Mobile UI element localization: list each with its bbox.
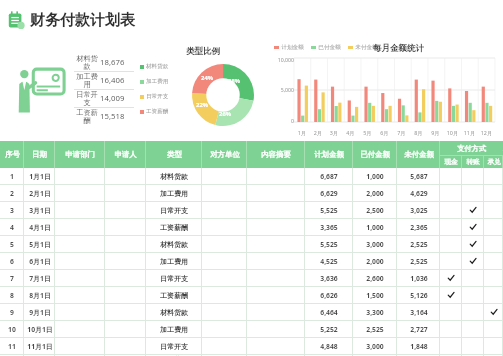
staticText: 2,525 (410, 257, 428, 266)
staticText: 5,687 (410, 172, 428, 181)
staticText: 未付金额 (355, 44, 378, 51)
staticText: 6月1日 (29, 257, 51, 266)
staticText: 支付方式 (457, 144, 486, 153)
staticText: 8月1日 (29, 291, 51, 300)
staticText: 1,000 (366, 223, 384, 232)
staticText: 22% (196, 101, 208, 109)
staticText: 加工费用 (160, 257, 188, 266)
staticText: 加工费用 (74, 72, 100, 89)
staticText: 日常开支 (160, 206, 188, 215)
staticText: 3,636 (320, 274, 338, 283)
staticText: 9 (10, 308, 14, 317)
staticText: 6 (10, 257, 14, 266)
staticText: 14,009 (100, 93, 132, 104)
staticText: 3,000 (366, 342, 384, 351)
button[interactable]: 2 (0, 185, 503, 201)
staticText: 6,687 (320, 172, 338, 181)
staticText: 15,518 (100, 111, 132, 122)
staticText: 对方单位 (210, 150, 240, 159)
staticText: 9月 (427, 129, 444, 136)
staticText: 5月1日 (29, 240, 51, 249)
staticText: 7月 (393, 129, 410, 136)
staticText: 日常开支 (146, 93, 169, 100)
staticText: 转账 (466, 158, 480, 166)
button[interactable]: 10 (0, 321, 503, 337)
button[interactable]: 11 (0, 338, 503, 354)
staticText: 2,525 (410, 240, 428, 249)
staticText: 1,848 (410, 342, 428, 351)
staticText: 4 (10, 223, 14, 232)
staticText: 4,629 (410, 189, 428, 198)
staticText: 2月 (310, 129, 326, 136)
staticText: 3月 (326, 129, 342, 136)
staticText: 日常开支 (160, 342, 188, 351)
staticText: 8 (10, 291, 14, 300)
button[interactable]: 1 (0, 168, 503, 184)
staticText: 4月1日 (29, 223, 51, 232)
staticText: 1,500 (366, 291, 384, 300)
button[interactable]: 7 (0, 270, 503, 286)
staticText: 2月1日 (29, 189, 51, 198)
staticText: 3月1日 (29, 206, 51, 215)
staticText: 计划金额 (314, 150, 344, 159)
button[interactable]: Report icon (0, 0, 503, 40)
staticText: 2 (10, 189, 14, 198)
staticText: 3 (10, 206, 14, 215)
staticText: 日常开支 (74, 90, 100, 107)
staticText: 5,525 (320, 206, 338, 215)
staticText: 财务付款计划表 (30, 11, 135, 30)
staticText: 现金 (444, 158, 458, 166)
staticText: 18,676 (100, 57, 132, 68)
button[interactable]: 6 (0, 253, 503, 269)
staticText: 工资薪酬 (160, 355, 188, 356)
staticText: 内容摘要 (261, 150, 291, 159)
button[interactable]: 12 (0, 355, 503, 356)
staticText: 11 (8, 342, 16, 351)
staticText: 2,000 (366, 189, 384, 198)
staticText: 2,525 (366, 325, 384, 334)
staticText: 加工费用 (160, 325, 188, 334)
staticText: 类型 (167, 150, 182, 159)
staticText: 8月 (410, 129, 427, 136)
staticText: 24% (201, 74, 213, 82)
button[interactable]: 9 (0, 304, 503, 320)
staticText: 3,000 (366, 240, 384, 249)
staticText: 1,000 (366, 172, 384, 181)
staticText: 11月1日 (27, 342, 53, 351)
staticText: 5月 (359, 129, 376, 136)
staticText: 已付金额 (360, 150, 390, 159)
staticText: 每月金额统计 (373, 43, 424, 54)
staticText: 1 (10, 172, 14, 181)
staticText: 5,525 (320, 240, 338, 249)
button[interactable]: 4 (0, 219, 503, 235)
staticText: 10,000 (270, 56, 294, 63)
staticText: 11月 (461, 129, 478, 136)
staticText: 10月1日 (27, 325, 53, 334)
staticText: 2,000 (366, 257, 384, 266)
staticText: 工资薪酬 (160, 223, 188, 232)
staticText: 工资薪酬 (74, 108, 100, 125)
staticText: 2,727 (410, 325, 428, 334)
button[interactable]: 8 (0, 287, 503, 303)
staticText: 工资薪酬 (160, 291, 188, 300)
staticText: 2,365 (410, 223, 428, 232)
staticText: 6,626 (320, 291, 338, 300)
staticText: 5,000 (270, 86, 294, 93)
button[interactable]: 5 (0, 236, 503, 252)
staticText: 序号 (5, 150, 20, 159)
staticText: 1,036 (410, 274, 428, 283)
staticText: 已付金额 (318, 44, 341, 51)
staticText: 12月 (478, 129, 495, 136)
staticText: 2,600 (366, 274, 384, 283)
staticText: 材料货款 (160, 240, 188, 249)
button[interactable]: 3 (0, 202, 503, 218)
staticText: 7 (10, 274, 14, 283)
staticText: 10月 (444, 129, 461, 136)
staticText: 6,629 (320, 189, 338, 198)
staticText: 6月 (376, 129, 393, 136)
staticText: 材料货款 (74, 54, 100, 71)
staticText: 加工费用 (146, 78, 169, 85)
